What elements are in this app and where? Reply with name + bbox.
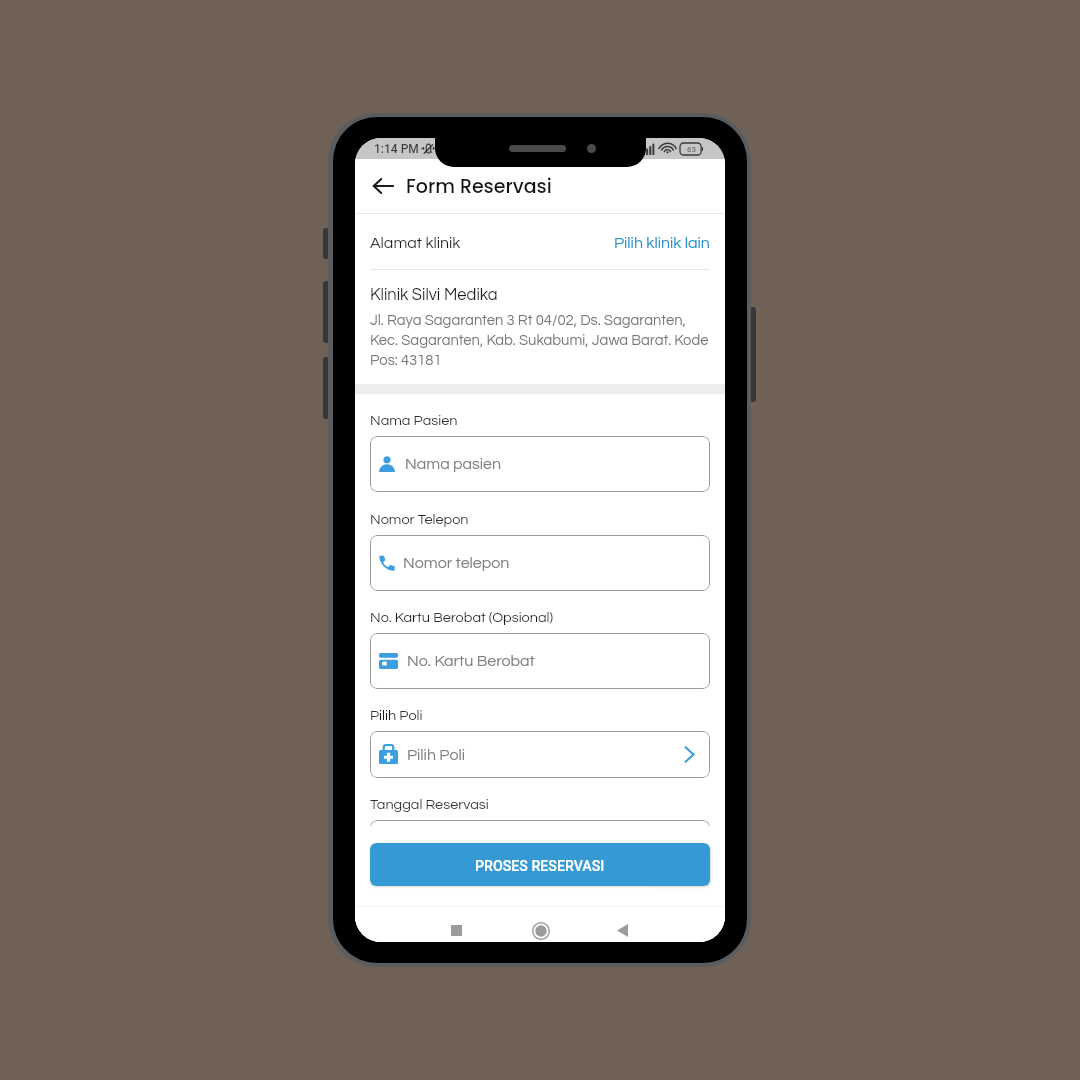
button[interactable]: Pilih klinik lain (614, 235, 710, 251)
button[interactable]: No. Kartu Berobat (370, 633, 710, 689)
staticText: Pilih Poli (370, 708, 423, 723)
button[interactable]: Home (523, 913, 558, 942)
staticText: Tanggal Reservasi (370, 797, 489, 812)
staticText: No. Kartu Berobat (Opsional) (370, 610, 554, 625)
staticText: Nama Pasien (370, 413, 458, 428)
staticText: Tanggal (407, 840, 465, 856)
button[interactable]: Tanggal (370, 820, 710, 876)
staticText: Pilih Poli (407, 747, 465, 763)
staticText: Pilih klinik lain (614, 235, 710, 251)
button[interactable]: Back (366, 169, 400, 203)
button[interactable]: PROSES RESERVASI (370, 843, 710, 886)
button[interactable]: Pilih Poli (370, 731, 710, 778)
button[interactable]: Recents (439, 913, 474, 942)
staticText: No. Kartu Berobat (407, 653, 535, 669)
button[interactable]: Nama pasien (370, 436, 710, 492)
staticText: PROSES RESERVASI (475, 858, 605, 875)
staticText: Klinik Silvi Medika (370, 286, 498, 303)
staticText: Alamat klinik (370, 235, 461, 251)
staticText: Form Reservasi (406, 173, 552, 200)
staticText: Jl. Raya Sagaranten 3 Rt 04/02, Ds. Saga… (370, 313, 709, 368)
staticText: Nomor Telepon (370, 512, 469, 527)
staticText: 1:14 PM (374, 142, 419, 156)
button[interactable]: Nomor telepon (370, 535, 710, 591)
staticText: 63 (687, 145, 696, 154)
staticText: Nama pasien (405, 456, 502, 472)
staticText: Nomor telepon (403, 555, 510, 571)
button[interactable]: Back (605, 913, 640, 942)
